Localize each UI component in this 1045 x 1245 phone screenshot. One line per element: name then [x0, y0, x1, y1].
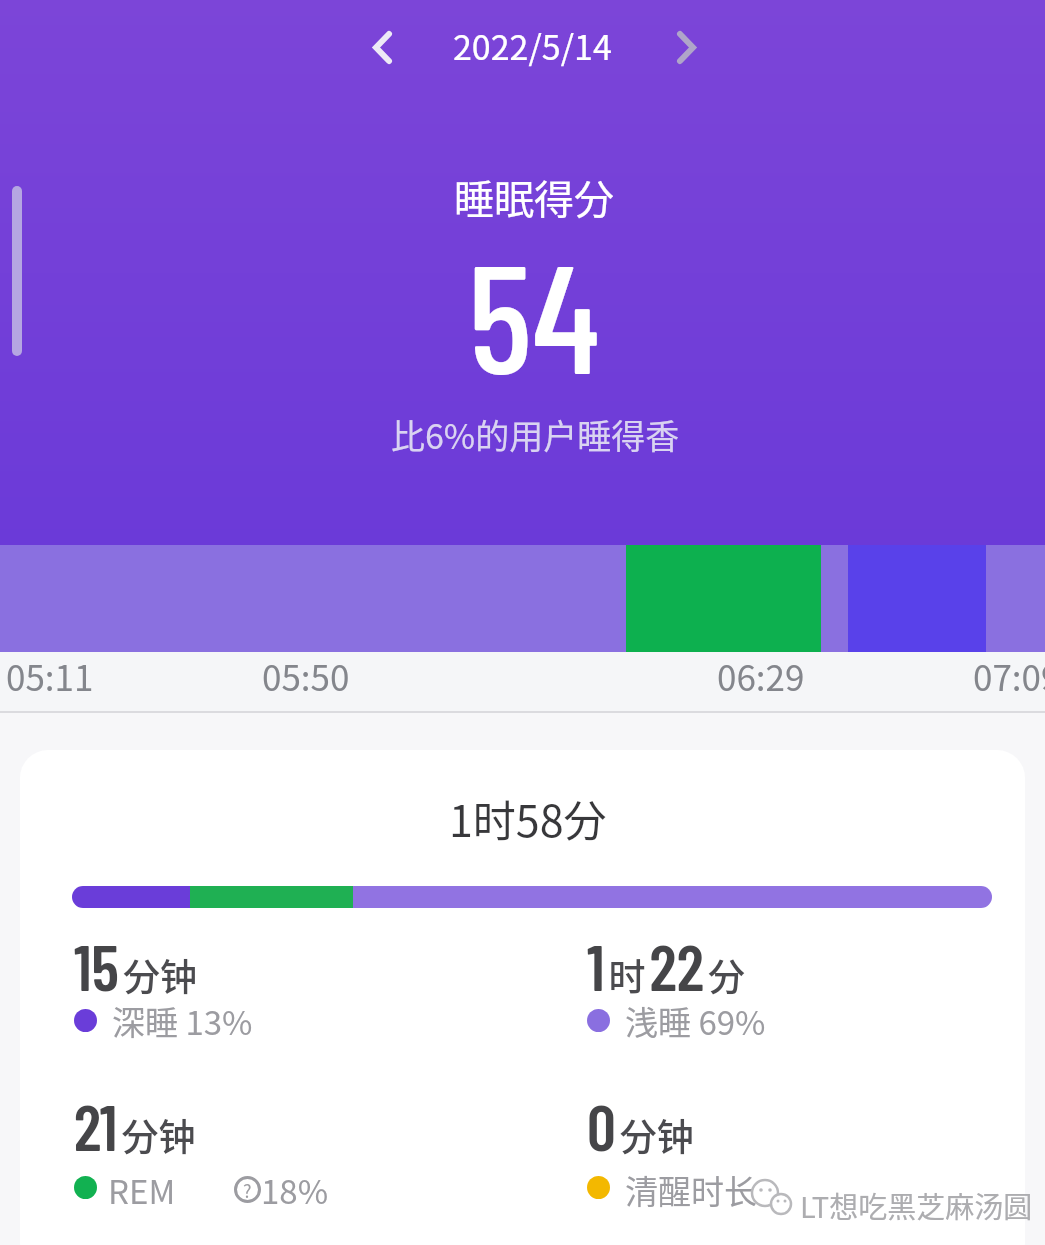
staticText: 18%: [261, 1166, 329, 1214]
staticText: ?: [243, 1177, 252, 1203]
staticText: 54: [468, 221, 600, 401]
staticText: 0 分钟: [587, 1087, 694, 1164]
staticText: 浅睡 69%: [625, 997, 766, 1045]
staticText: 睡眠得分: [454, 168, 614, 226]
button[interactable]: [656, 17, 716, 77]
staticText: 15 分钟: [74, 927, 197, 1004]
staticText: 2022/5/14: [453, 21, 612, 70]
staticText: 21 分钟: [74, 1087, 196, 1164]
button[interactable]: 2022/5/14: [440, 22, 625, 72]
staticText: 07:09: [973, 650, 1045, 701]
staticText: 深睡 13%: [112, 997, 253, 1045]
staticText: 06:29: [717, 650, 805, 701]
staticText: 05:11: [6, 650, 94, 701]
staticText: 1 时 22 分: [587, 927, 745, 1004]
staticText: 比6%的用户睡得香: [391, 410, 680, 459]
staticText: 清醒时长: [625, 1166, 757, 1214]
staticText: 1时58分: [449, 787, 607, 843]
staticText: LT想吃黑芝麻汤圆: [800, 1184, 1033, 1222]
staticText: 05:50: [262, 650, 350, 701]
staticText: REM: [108, 1166, 176, 1214]
button[interactable]: [352, 17, 412, 77]
